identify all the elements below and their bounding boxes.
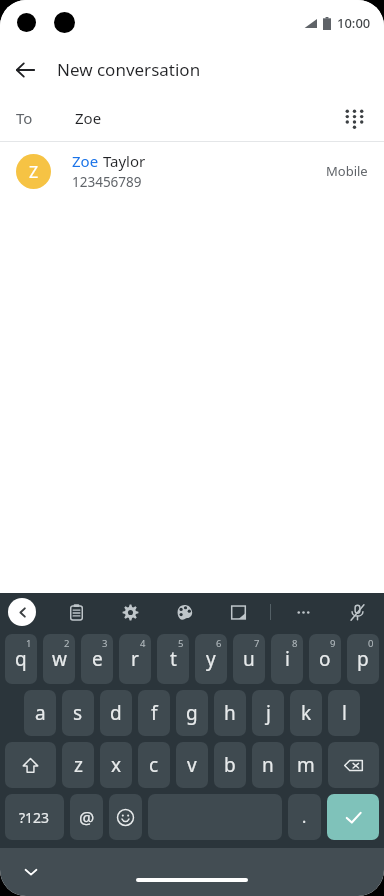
button[interactable]: n bbox=[252, 742, 284, 788]
button[interactable]: k bbox=[290, 690, 322, 736]
button[interactable]: x bbox=[100, 742, 132, 788]
staticText: w bbox=[52, 646, 67, 672]
staticText: To bbox=[16, 108, 33, 128]
button[interactable]: 3 bbox=[81, 634, 113, 684]
button[interactable]: 6 bbox=[195, 634, 227, 684]
button[interactable]: Back bbox=[0, 45, 49, 94]
button[interactable]: d bbox=[100, 690, 132, 736]
button[interactable]: g bbox=[176, 690, 208, 736]
staticText: 6 bbox=[216, 637, 222, 650]
button[interactable]: 0 bbox=[347, 634, 379, 684]
staticText: 9 bbox=[330, 637, 336, 650]
button[interactable]: Settings bbox=[115, 597, 145, 627]
button[interactable]: . bbox=[288, 794, 321, 840]
staticText: k bbox=[301, 700, 312, 726]
staticText: ?123 bbox=[19, 808, 50, 827]
staticText: j bbox=[266, 700, 271, 726]
button[interactable]: Close toolbar bbox=[8, 598, 36, 626]
staticText: Mobile bbox=[326, 162, 368, 180]
staticText: b bbox=[224, 752, 236, 778]
button[interactable]: l bbox=[328, 690, 360, 736]
button[interactable]: Hide keyboard bbox=[14, 855, 48, 889]
staticText: u bbox=[243, 646, 255, 672]
staticText: q bbox=[15, 646, 27, 672]
button[interactable]: 4 bbox=[119, 634, 151, 684]
button[interactable]: z bbox=[62, 742, 94, 788]
staticText: r bbox=[131, 646, 139, 672]
staticText: 7 bbox=[254, 637, 260, 650]
staticText: New conversation bbox=[57, 58, 201, 81]
staticText: 10:00 bbox=[337, 14, 371, 32]
staticText: e bbox=[92, 646, 103, 672]
staticText: g bbox=[186, 700, 198, 726]
staticText: Zoe bbox=[75, 108, 102, 128]
staticText: Z bbox=[29, 161, 39, 183]
button[interactable]: Z bbox=[0, 142, 384, 200]
staticText: 8 bbox=[292, 637, 298, 650]
button[interactable]: Backspace bbox=[328, 742, 379, 788]
button[interactable]: b bbox=[214, 742, 246, 788]
staticText: c bbox=[149, 752, 159, 778]
button[interactable]: Voice input off bbox=[342, 597, 372, 627]
button[interactable]: 1 bbox=[5, 634, 37, 684]
staticText: a bbox=[35, 700, 46, 726]
button[interactable]: f bbox=[138, 690, 170, 736]
staticText: s bbox=[73, 700, 83, 726]
staticText: v bbox=[187, 752, 197, 778]
staticText: h bbox=[224, 700, 236, 726]
button[interactable]: More bbox=[288, 597, 318, 627]
button[interactable]: Dialpad bbox=[334, 98, 374, 138]
button[interactable]: c bbox=[138, 742, 170, 788]
button[interactable]: v bbox=[176, 742, 208, 788]
button[interactable]: j bbox=[252, 690, 284, 736]
staticText: x bbox=[111, 752, 122, 778]
button[interactable]: Send bbox=[327, 794, 379, 840]
staticText: 2 bbox=[64, 637, 70, 650]
staticText: l bbox=[342, 700, 347, 726]
staticText: i bbox=[285, 646, 290, 672]
staticText: n bbox=[262, 752, 274, 778]
button[interactable]: 7 bbox=[233, 634, 265, 684]
button[interactable]: 5 bbox=[157, 634, 189, 684]
button[interactable]: Shift bbox=[5, 742, 56, 788]
staticText: 0 bbox=[368, 637, 374, 650]
staticText: m bbox=[297, 752, 315, 778]
button[interactable]: Themes bbox=[169, 597, 199, 627]
staticText: y bbox=[206, 646, 216, 672]
button[interactable]: Clipboard bbox=[61, 597, 91, 627]
staticText: f bbox=[151, 700, 158, 726]
staticText: 3 bbox=[102, 637, 108, 650]
staticText: z bbox=[74, 752, 83, 778]
staticText: Taylor bbox=[99, 151, 146, 171]
staticText: . bbox=[302, 806, 307, 828]
button[interactable]: h bbox=[214, 690, 246, 736]
button[interactable]: a bbox=[24, 690, 56, 736]
staticText: 5 bbox=[178, 637, 184, 650]
button[interactable]: 2 bbox=[43, 634, 75, 684]
staticText: p bbox=[357, 646, 369, 672]
button[interactable]: @ bbox=[70, 794, 103, 840]
button[interactable]: Emoji bbox=[109, 794, 142, 840]
button[interactable]: ?123 bbox=[5, 794, 64, 840]
button[interactable]: 8 bbox=[271, 634, 303, 684]
staticText: @ bbox=[79, 806, 95, 829]
staticText: 123456789 bbox=[72, 173, 142, 191]
staticText: 4 bbox=[140, 637, 146, 650]
button[interactable]: 9 bbox=[309, 634, 341, 684]
staticText: d bbox=[110, 700, 122, 726]
button[interactable]: m bbox=[290, 742, 322, 788]
staticText: Zoe bbox=[72, 151, 99, 171]
staticText: t bbox=[170, 646, 177, 672]
button[interactable]: s bbox=[62, 690, 94, 736]
button[interactable]: Resize bbox=[223, 597, 253, 627]
staticText: 1 bbox=[26, 637, 32, 650]
staticText: o bbox=[319, 646, 331, 672]
